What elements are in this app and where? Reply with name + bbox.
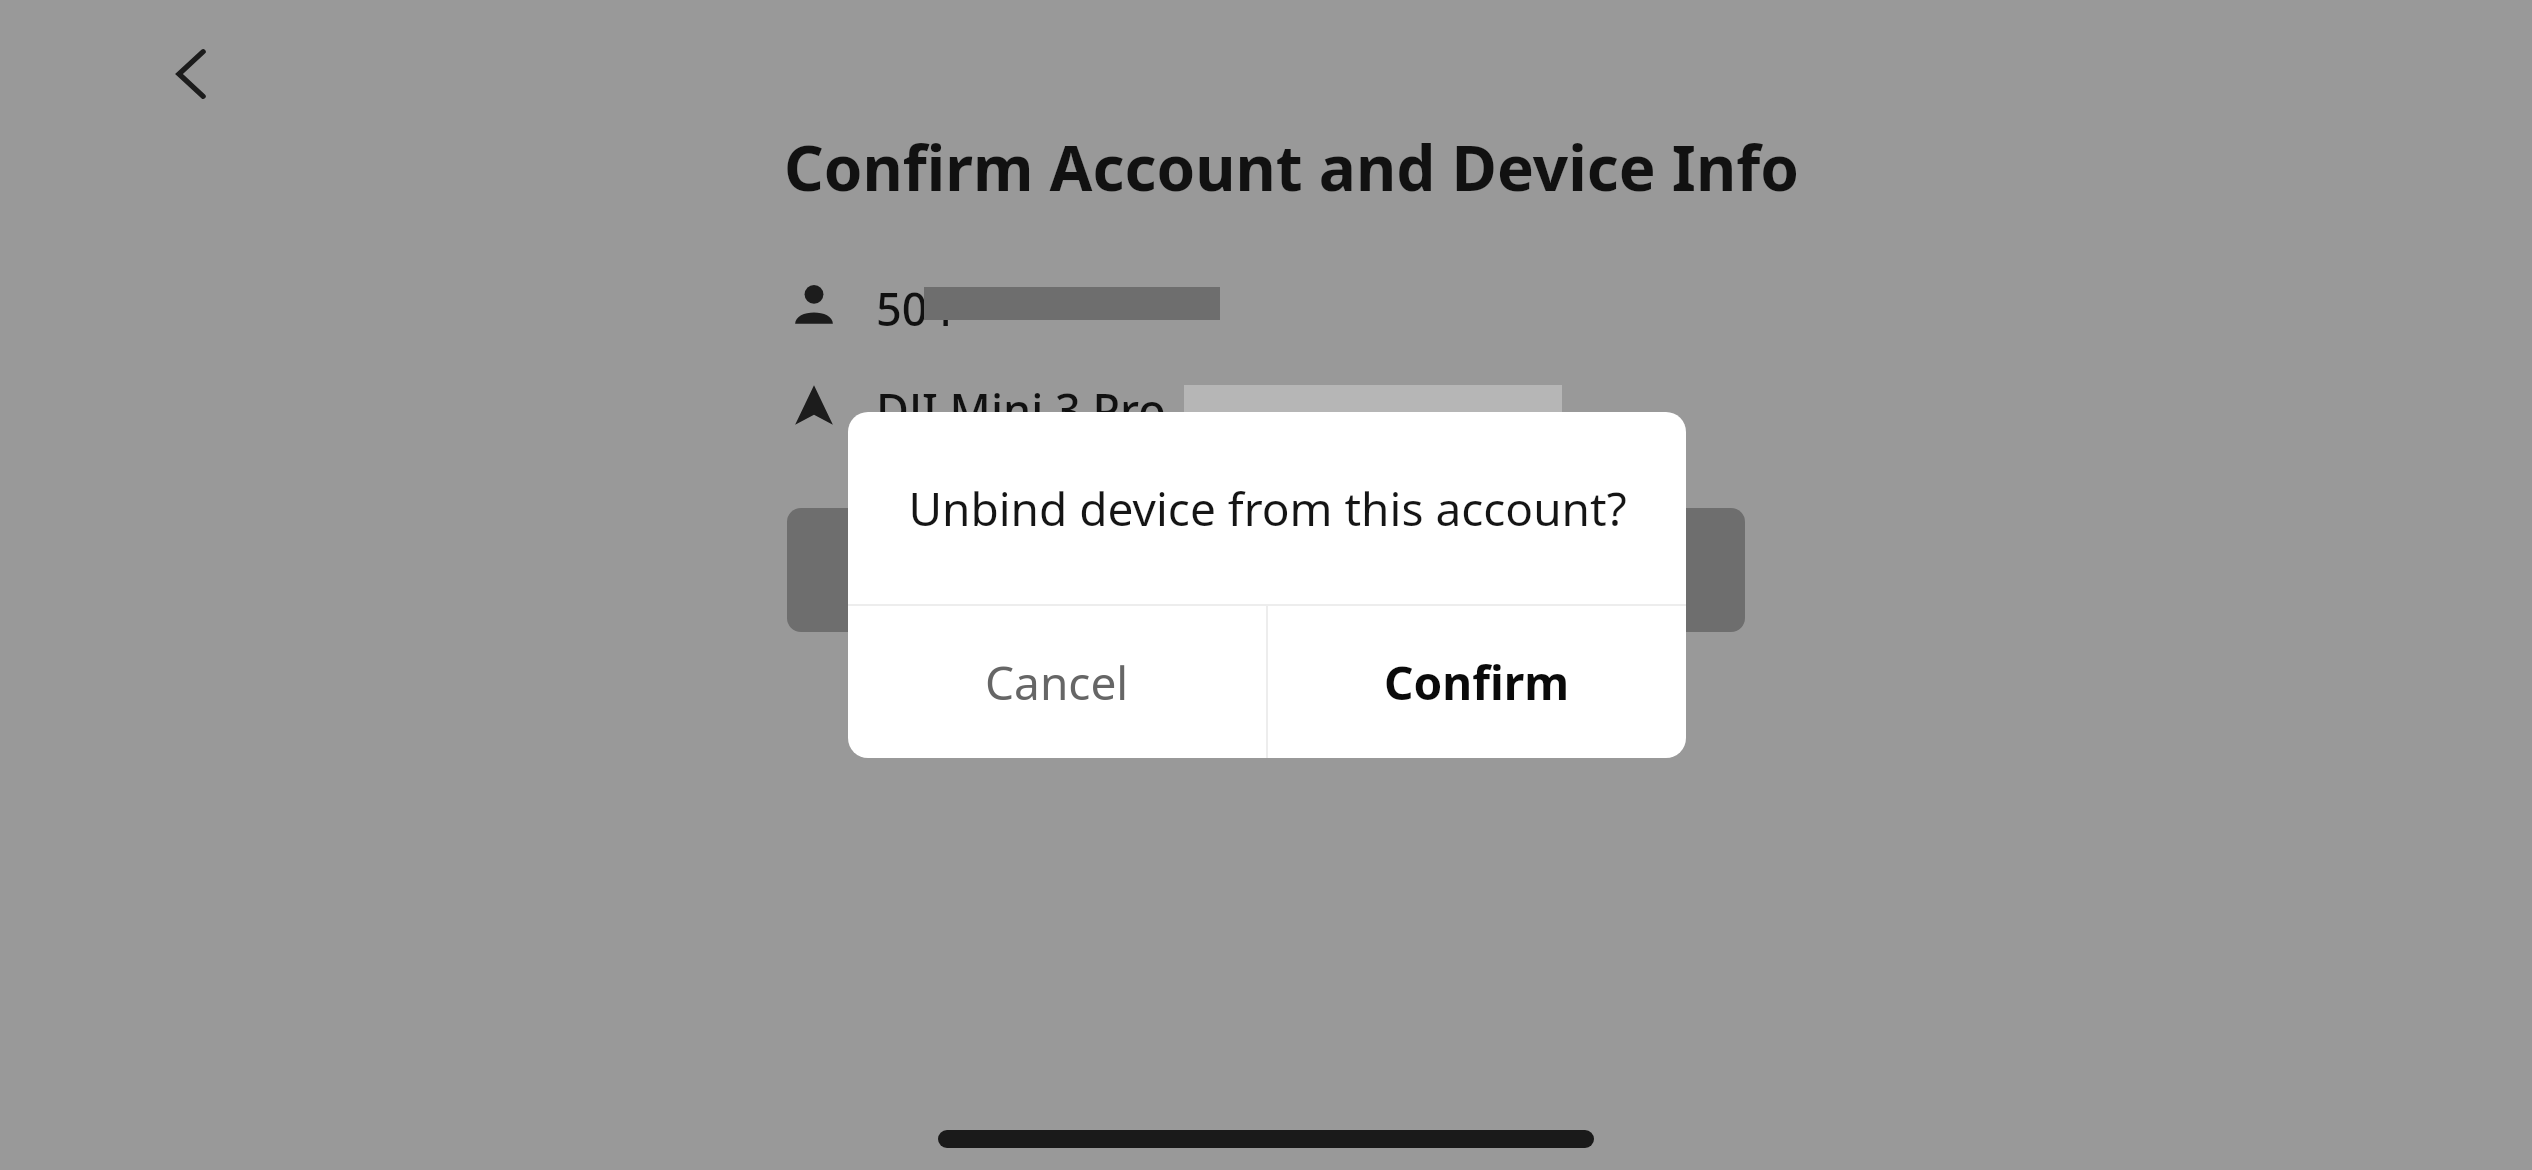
staticText: Confirm	[1384, 651, 1570, 714]
staticText: 504	[876, 278, 954, 339]
staticText: Cancel	[985, 651, 1129, 714]
staticText: DJI Mini 3 Pro - 15	[876, 379, 1255, 440]
staticText: Unbind device from this account?	[908, 477, 1627, 540]
button[interactable]: Back	[140, 22, 244, 126]
staticText: Confirm Account and Device Info	[784, 125, 1800, 209]
button[interactable]	[787, 508, 1745, 632]
button[interactable]: Confirm	[1268, 606, 1686, 758]
button[interactable]: Cancel	[848, 606, 1266, 758]
